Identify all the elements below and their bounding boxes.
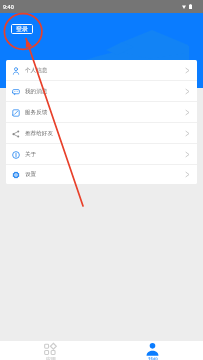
button[interactable]: 应用	[0, 341, 101, 360]
button[interactable]: 服务反馈	[6, 102, 197, 123]
staticText: 服务反馈	[25, 109, 48, 116]
button[interactable]: 我的消息	[6, 81, 197, 102]
button[interactable]: 推荐给好友	[6, 123, 197, 144]
button[interactable]: 设置	[6, 165, 197, 184]
button[interactable]: 个人信息	[6, 60, 197, 81]
staticText: 个人信息	[25, 67, 48, 74]
staticText: 推荐给好友	[25, 130, 53, 137]
button[interactable]: 关于	[6, 144, 197, 165]
staticText: 登录	[16, 25, 28, 33]
staticText: 应用	[46, 356, 56, 360]
button[interactable]: 登录	[11, 24, 33, 34]
staticText: 设置	[25, 171, 37, 178]
staticText: 我的	[148, 356, 158, 360]
staticText: 关于	[25, 151, 37, 158]
staticText: 9:40	[3, 3, 14, 10]
button[interactable]: 我的	[101, 341, 203, 360]
staticText: 我的消息	[25, 88, 48, 95]
